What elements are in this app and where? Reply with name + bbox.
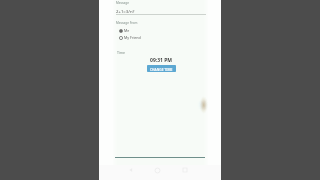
- button[interactable]: CHANGE TIME: [147, 65, 176, 72]
- staticText: Me: [124, 28, 130, 33]
- staticText: 09:31 PM: [100, 57, 222, 64]
- staticText: Time: [117, 50, 126, 55]
- staticText: My Friend: [124, 35, 141, 40]
- staticText: 2+1=3/n?: [116, 8, 135, 14]
- button[interactable]: Me: [119, 28, 130, 33]
- staticText: Message From: [116, 21, 138, 25]
- staticText: CHANGE TIME: [150, 67, 173, 71]
- button[interactable]: My Friend: [119, 35, 141, 40]
- staticText: Message: [116, 1, 129, 5]
